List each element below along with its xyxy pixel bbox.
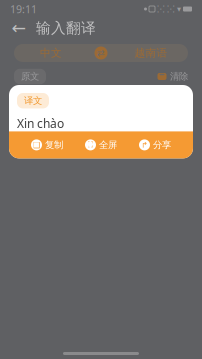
button[interactable]: 越南语 <box>114 46 188 59</box>
staticText: 中文 <box>40 46 62 59</box>
staticText: 分享 <box>153 139 171 151</box>
staticText: 输入翻译 <box>36 19 96 37</box>
staticText: 清除 <box>170 71 188 82</box>
staticText: ⛶ <box>87 141 93 149</box>
staticText: 19:11 <box>10 2 37 16</box>
staticText: 复制 <box>45 139 63 151</box>
button[interactable]: 清除 <box>157 71 188 82</box>
staticText: ← <box>11 18 26 38</box>
button[interactable]: ❑ <box>31 139 63 151</box>
staticText: ↱ <box>141 140 148 149</box>
staticText: ❑ <box>33 140 40 149</box>
button[interactable]: 切换语言 <box>88 45 114 61</box>
staticText: ⁙ <box>167 3 175 15</box>
button[interactable]: ↱ <box>139 139 171 151</box>
staticText: ▾ <box>177 4 181 14</box>
button[interactable]: 中文 <box>14 46 88 59</box>
staticText: ⁙ <box>157 3 165 15</box>
staticText: Xin chào <box>17 115 64 131</box>
button[interactable]: ⛶ <box>85 139 117 151</box>
staticText: 原文 <box>21 71 39 82</box>
staticText: ⇄ <box>97 48 105 58</box>
button[interactable]: 返回 <box>10 19 28 37</box>
staticText: 译文 <box>24 95 42 106</box>
staticText: 全屏 <box>99 139 117 151</box>
staticText: 越南语 <box>134 46 167 59</box>
